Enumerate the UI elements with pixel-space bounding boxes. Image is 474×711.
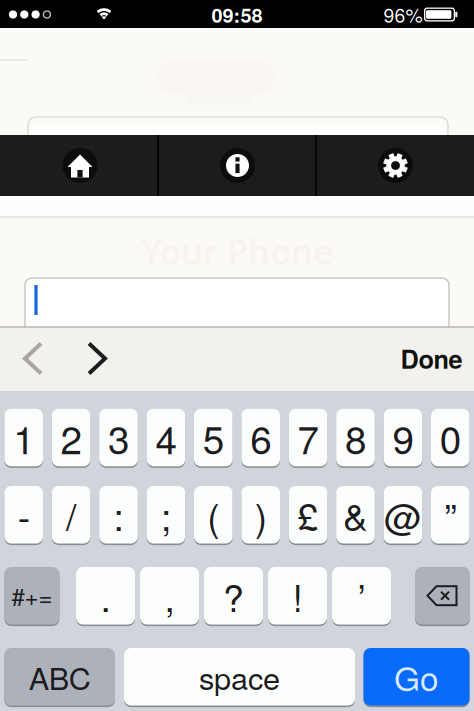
staticText: 5	[203, 410, 224, 465]
staticText: .	[100, 569, 110, 622]
staticText: #+=	[11, 579, 52, 613]
staticText: 0	[440, 410, 461, 465]
button[interactable]: 7	[289, 409, 327, 466]
button[interactable]: Go	[363, 648, 469, 705]
staticText: /	[66, 488, 76, 541]
button[interactable]: ABC	[4, 648, 115, 705]
staticText: ?	[223, 569, 244, 622]
button[interactable]: Settings	[317, 135, 473, 196]
button[interactable]: Done	[400, 340, 462, 377]
staticText: 3	[108, 410, 129, 465]
button[interactable]: 3	[99, 409, 138, 466]
button[interactable]: @	[384, 486, 422, 543]
button[interactable]: &	[336, 486, 375, 543]
button[interactable]: ?	[204, 567, 263, 624]
button[interactable]: 8	[336, 409, 375, 466]
staticText: 9	[392, 410, 413, 465]
button[interactable]: 5	[194, 409, 233, 466]
staticText: space	[199, 655, 280, 699]
button[interactable]: -	[4, 486, 43, 543]
staticText: !	[292, 569, 302, 622]
staticText: Go	[394, 653, 439, 701]
staticText: 96%	[383, 1, 422, 28]
staticText: ,	[164, 569, 174, 622]
staticText: 6	[250, 410, 271, 465]
staticText: 1	[13, 410, 34, 465]
button[interactable]: Delete	[415, 567, 470, 624]
button[interactable]: (	[194, 486, 233, 543]
staticText: (	[207, 488, 219, 541]
button[interactable]: Home	[1, 135, 157, 196]
button[interactable]: ;	[147, 486, 185, 543]
button[interactable]: ”	[431, 486, 470, 543]
button[interactable]: .	[76, 567, 135, 624]
button[interactable]: /	[52, 486, 90, 543]
button[interactable]: 6	[241, 409, 280, 466]
staticText: @	[384, 488, 422, 541]
button[interactable]: 9	[384, 409, 422, 466]
staticText: Done	[400, 340, 462, 377]
staticText: ABC	[29, 655, 91, 699]
button[interactable]: #+=	[4, 567, 59, 624]
staticText: 7	[298, 410, 319, 465]
staticText: ”	[444, 488, 456, 541]
button[interactable]: Text field	[25, 278, 449, 334]
staticText: -	[18, 488, 30, 541]
staticText: )	[255, 488, 267, 541]
staticText: ;	[161, 488, 171, 541]
button[interactable]: ,	[140, 567, 199, 624]
button[interactable]: ’	[332, 567, 391, 624]
button[interactable]: !	[268, 567, 327, 624]
button[interactable]: £	[289, 486, 327, 543]
button[interactable]: 4	[147, 409, 185, 466]
staticText: 09:58	[211, 0, 262, 29]
staticText: &	[343, 488, 368, 541]
button[interactable]: :	[99, 486, 138, 543]
button[interactable]: Info	[159, 135, 315, 196]
button[interactable]: Previous field	[9, 334, 57, 382]
staticText: £	[298, 488, 319, 541]
button[interactable]: 0	[431, 409, 470, 466]
staticText: 4	[155, 410, 176, 465]
button[interactable]: 2	[52, 409, 90, 466]
button[interactable]: )	[241, 486, 280, 543]
button[interactable]: space	[124, 648, 355, 705]
button[interactable]: 1	[4, 409, 43, 466]
button[interactable]: Next field	[73, 334, 121, 382]
staticText: :	[113, 488, 123, 541]
staticText: 8	[345, 410, 366, 465]
staticText: 2	[61, 410, 82, 465]
staticText: ’	[357, 569, 365, 622]
